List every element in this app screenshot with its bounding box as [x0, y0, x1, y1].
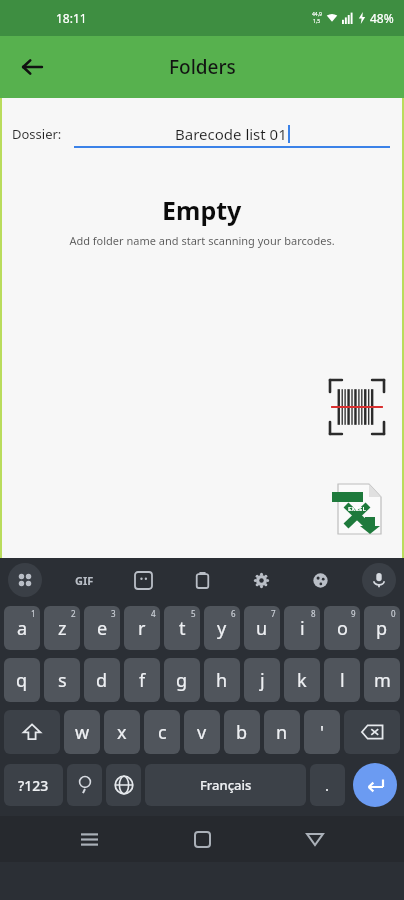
button[interactable]: Theme — [303, 563, 337, 597]
button[interactable]: Enter — [353, 763, 397, 807]
button[interactable]: s — [44, 658, 80, 702]
staticText: Folders — [169, 54, 236, 80]
button[interactable]: Settings — [244, 563, 278, 597]
button[interactable]: b — [224, 710, 260, 754]
button[interactable]: x — [104, 710, 140, 754]
staticText: 44,9 — [312, 11, 322, 18]
button[interactable]: f — [124, 658, 160, 702]
staticText: 6 — [231, 608, 236, 619]
staticText: 8 — [311, 608, 316, 619]
button[interactable]: Stickers — [126, 563, 160, 597]
staticText: 1 — [31, 608, 36, 619]
button[interactable]: ' — [304, 710, 340, 754]
button[interactable]: t — [164, 606, 200, 650]
staticText: 7 — [271, 608, 276, 619]
button[interactable]: Numbers — [4, 764, 63, 806]
button[interactable]: m — [364, 658, 400, 702]
button[interactable]: Voice input — [362, 563, 396, 597]
staticText: 5 — [191, 608, 196, 619]
staticText: c — [158, 720, 167, 745]
staticText: ?123 — [18, 776, 49, 795]
staticText: 0 — [391, 608, 396, 619]
button[interactable]: u — [244, 606, 280, 650]
button[interactable]: Language — [106, 764, 141, 806]
button[interactable]: k — [284, 658, 320, 702]
staticText: 9 — [351, 608, 356, 619]
button[interactable]: v — [184, 710, 220, 754]
button[interactable]: Space — [145, 764, 306, 806]
staticText: Français — [200, 776, 252, 794]
staticText: Empty — [162, 193, 242, 227]
button[interactable]: Period — [310, 764, 345, 806]
button[interactable]: a — [4, 606, 40, 650]
staticText: d — [96, 668, 108, 693]
staticText: p — [376, 616, 388, 641]
button[interactable]: d — [84, 658, 120, 702]
button[interactable]: GIF — [67, 563, 101, 597]
button[interactable]: i — [284, 606, 320, 650]
staticText: x — [117, 720, 127, 745]
button[interactable]: g — [164, 658, 200, 702]
staticText: 3 — [111, 608, 116, 619]
button[interactable]: Shift — [4, 710, 60, 754]
staticText: 1,5 — [313, 18, 321, 25]
button[interactable]: p — [364, 606, 400, 650]
button[interactable]: Recents — [65, 816, 113, 862]
button[interactable]: c — [144, 710, 180, 754]
staticText: y — [217, 616, 227, 641]
button[interactable]: z — [44, 606, 80, 650]
button[interactable]: n — [264, 710, 300, 754]
staticText: 18:11 — [56, 10, 87, 26]
staticText: 4 — [151, 608, 156, 619]
button[interactable]: Barecode list 01 — [74, 120, 390, 148]
button[interactable]: Back — [10, 45, 54, 89]
button[interactable]: e — [84, 606, 120, 650]
button[interactable]: Clipboard — [185, 563, 219, 597]
staticText: Barecode list 01 — [175, 124, 287, 144]
button[interactable]: o — [324, 606, 360, 650]
button[interactable]: Backspace — [344, 710, 400, 754]
button[interactable]: w — [64, 710, 100, 754]
staticText: z — [58, 616, 67, 641]
staticText: q — [16, 668, 28, 693]
button[interactable]: Emoji — [67, 764, 102, 806]
staticText: a — [17, 616, 28, 641]
button[interactable]: Scan barcode — [326, 376, 388, 438]
button[interactable]: h — [204, 658, 240, 702]
staticText: e — [97, 616, 108, 641]
button[interactable]: Export to Excel — [328, 480, 386, 538]
button[interactable]: j — [244, 658, 280, 702]
staticText: EXCEL — [348, 505, 366, 513]
staticText: . — [325, 775, 330, 795]
staticText: g — [176, 668, 188, 693]
button[interactable]: q — [4, 658, 40, 702]
staticText: h — [216, 668, 228, 693]
staticText: n — [276, 720, 288, 745]
button[interactable]: l — [324, 658, 360, 702]
staticText: s — [58, 668, 67, 693]
button[interactable]: r — [124, 606, 160, 650]
staticText: v — [197, 720, 207, 745]
staticText: GIF — [75, 573, 94, 588]
staticText: u — [256, 616, 268, 641]
staticText: k — [297, 668, 307, 693]
staticText: Add folder name and start scanning your … — [69, 233, 335, 248]
staticText: 2 — [71, 608, 76, 619]
staticText: Dossier: — [12, 125, 62, 143]
staticText: 48% — [370, 10, 394, 26]
button[interactable]: Home — [178, 816, 226, 862]
staticText: i — [300, 616, 305, 641]
staticText: t — [179, 616, 186, 641]
button[interactable]: Back — [291, 816, 339, 862]
staticText: w — [75, 720, 90, 745]
staticText: r — [138, 616, 146, 641]
staticText: m — [374, 668, 391, 693]
staticText: j — [260, 668, 265, 693]
staticText: l — [340, 668, 345, 693]
staticText: b — [236, 720, 248, 745]
button[interactable]: y — [204, 606, 240, 650]
staticText: f — [139, 668, 146, 693]
staticText: ' — [320, 720, 325, 745]
button[interactable]: Apps — [8, 563, 42, 597]
staticText: o — [337, 616, 348, 641]
